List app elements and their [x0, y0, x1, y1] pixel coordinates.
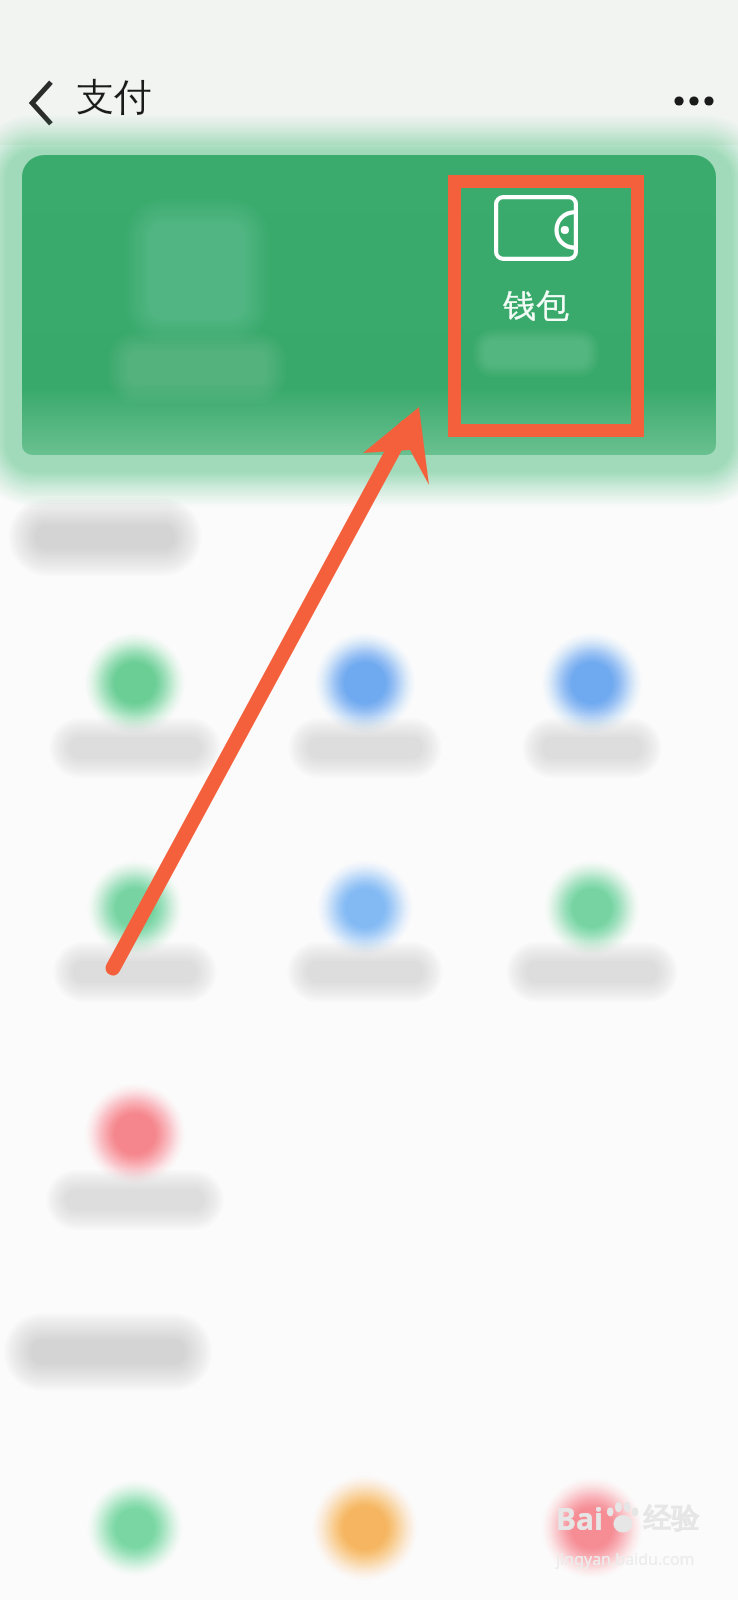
staticText: 经验 — [643, 1501, 699, 1536]
button[interactable]: 更多 — [664, 71, 724, 131]
button[interactable]: 钱包 — [456, 195, 616, 375]
staticText: Bai — [556, 1498, 603, 1539]
staticText: 钱包 — [456, 285, 616, 327]
button[interactable]: 返回 — [14, 75, 70, 131]
button[interactable]: 钱包 — [22, 155, 716, 455]
staticText: jingyan.baidu.com — [556, 1548, 695, 1570]
staticText: 支付 — [76, 73, 152, 121]
